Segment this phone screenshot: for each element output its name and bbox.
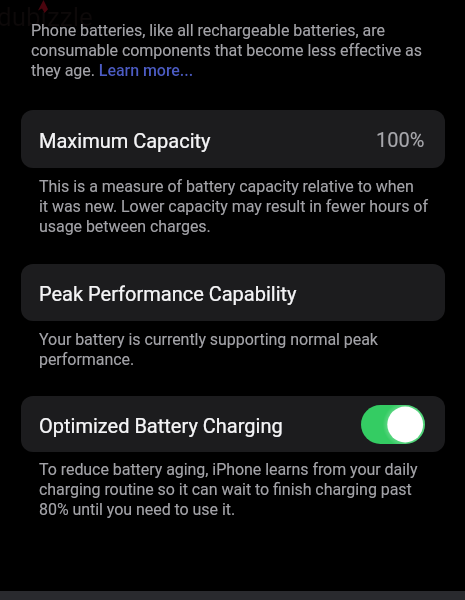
button[interactable]: Optimized Battery Charging (21, 396, 445, 452)
staticText: Peak Performance Capability (39, 282, 297, 305)
staticText: Maximum Capacity (39, 129, 211, 152)
button[interactable]: Maximum Capacity (21, 110, 445, 168)
button[interactable]: Optimized Battery Charging, on (361, 405, 425, 444)
staticText: Your battery is currently supporting nor… (39, 329, 378, 369)
button[interactable]: Peak Performance Capability (21, 264, 445, 321)
staticText: Optimized Battery Charging (39, 414, 283, 437)
staticText: Phone batteries, like all rechargeable b… (31, 20, 422, 80)
staticText: To reduce battery aging, iPhone learns f… (39, 459, 418, 519)
staticText: dubizzle (0, 2, 93, 32)
staticText: This is a measure of battery capacity re… (39, 176, 428, 236)
staticText: 100% (376, 128, 425, 151)
